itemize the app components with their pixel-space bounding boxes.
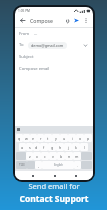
staticText: t <box>47 136 49 141</box>
staticText: . <box>77 163 78 168</box>
button[interactable]: d <box>33 143 40 151</box>
button[interactable]: . <box>74 161 81 169</box>
staticText: , <box>38 163 39 168</box>
staticText: e <box>32 136 35 141</box>
staticText: h <box>59 145 62 150</box>
staticText: w <box>25 136 28 141</box>
staticText: d <box>35 145 38 150</box>
button[interactable]: Compose email <box>19 62 89 75</box>
staticText: s <box>29 145 31 150</box>
button[interactable]: h <box>56 143 64 151</box>
button[interactable]: English <box>42 161 74 169</box>
button[interactable]: i <box>68 134 76 142</box>
button[interactable]: u <box>60 134 68 142</box>
staticText: f <box>43 145 45 150</box>
staticText: m <box>75 154 79 159</box>
staticText: c <box>44 154 46 159</box>
staticText: n <box>68 154 71 159</box>
staticText: To <box>19 42 24 48</box>
staticText: Subject <box>19 54 34 60</box>
staticText: From <box>19 31 30 37</box>
button[interactable]: f <box>40 143 48 151</box>
button[interactable]: m <box>73 152 81 160</box>
button[interactable]: Expand recipients <box>81 41 89 49</box>
button[interactable]: q <box>16 134 23 142</box>
button[interactable]: Attach file <box>63 16 72 25</box>
staticText: g <box>51 145 54 150</box>
button[interactable]: y <box>52 134 60 142</box>
staticText: l <box>84 145 85 150</box>
staticText: a <box>21 145 24 150</box>
button[interactable]: r <box>37 134 44 142</box>
staticText: x <box>36 154 38 159</box>
staticText: k <box>75 145 77 150</box>
staticText: q <box>18 136 21 141</box>
staticText: Contact Support <box>19 193 89 205</box>
staticText: y <box>55 136 57 141</box>
button[interactable]: From <box>19 28 89 39</box>
button[interactable]: j <box>64 143 72 151</box>
button[interactable]: o <box>76 134 84 142</box>
button[interactable]: p <box>84 134 92 142</box>
staticText: 1:05 PM <box>18 9 30 13</box>
staticText: v <box>52 154 54 159</box>
button[interactable]: c <box>41 152 49 160</box>
staticText: Send email for <box>28 181 80 191</box>
button[interactable]: v <box>49 152 57 160</box>
staticText: r <box>40 136 42 141</box>
staticText: u <box>63 136 66 141</box>
staticText: b <box>60 154 63 159</box>
button[interactable]: Back <box>18 16 27 25</box>
button[interactable]: Recents <box>72 172 79 179</box>
button[interactable]: More options <box>81 16 90 25</box>
staticText: o <box>79 136 82 141</box>
button[interactable]: b <box>57 152 65 160</box>
staticText: p <box>87 136 90 141</box>
button[interactable]: t <box>44 134 52 142</box>
button[interactable]: ?123 <box>16 161 27 169</box>
button[interactable]: w <box>23 134 30 142</box>
button[interactable]: Back <box>29 172 36 179</box>
button[interactable]: x <box>33 152 41 160</box>
staticText: ?123 <box>19 163 25 167</box>
staticText: demo@gmail.com <box>31 43 64 48</box>
staticText: Compose email <box>19 66 50 72</box>
staticText: z <box>29 154 31 159</box>
button[interactable]: l <box>80 143 88 151</box>
button[interactable]: To <box>19 39 89 51</box>
button[interactable]: n <box>65 152 73 160</box>
button[interactable]: Home <box>51 172 58 179</box>
staticText: i <box>72 136 73 141</box>
button[interactable]: s <box>26 143 33 151</box>
button[interactable]: a <box>19 143 26 151</box>
button[interactable]: Compose <box>30 17 54 24</box>
button[interactable]: Subject <box>19 51 89 62</box>
button[interactable]: g <box>48 143 56 151</box>
button[interactable]: z <box>26 152 33 160</box>
staticText: ... <box>34 31 38 37</box>
button[interactable]: , <box>35 161 42 169</box>
button[interactable]: k <box>72 143 80 151</box>
staticText: j <box>68 145 69 150</box>
staticText: English <box>54 163 63 167</box>
button[interactable]: e <box>30 134 37 142</box>
button[interactable]: Send <box>72 16 81 25</box>
